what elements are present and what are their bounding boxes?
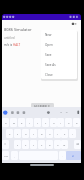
button[interactable]: r [26,118,33,127]
staticText: q [5,121,7,124]
staticText: 8086 Simulator [4,27,32,32]
button[interactable]: ⇧ [2,140,9,149]
button[interactable]: ASSEMBLE [31,103,54,110]
button[interactable]: e [18,118,25,127]
button[interactable]: g [38,129,45,138]
staticText: Save As [45,63,56,67]
staticText: l [72,132,73,135]
staticText: u [53,121,55,124]
button[interactable]: s [14,129,21,138]
button[interactable]: z [14,140,21,149]
button[interactable]: q [2,118,9,127]
staticText: ⇧ [4,143,7,146]
button[interactable]: ↵ [66,151,81,160]
staticText: ↵ [72,154,75,157]
button[interactable]: c [30,140,37,149]
staticText: Close [45,73,53,77]
button[interactable]: ⌫ [74,140,81,149]
staticText: HALT [13,43,21,47]
staticText: n [57,143,59,146]
staticText: b [49,143,51,146]
staticText: w [13,121,15,124]
button[interactable]: Save As [41,60,77,70]
staticText: untitled [4,36,15,40]
staticText: t [37,121,38,124]
button[interactable]: ?123 [2,151,9,160]
staticText: Open [45,43,53,47]
staticText: i [60,121,61,124]
staticText: r [29,121,30,124]
button[interactable]: a [6,129,13,138]
staticText: New [45,33,52,37]
button[interactable]: x [22,140,29,149]
staticText: ASSEMBLE [34,105,51,109]
staticText: d [25,132,27,135]
staticText: ⌫ [76,143,80,146]
staticText: j [57,132,58,135]
button[interactable]: n [54,140,61,149]
button[interactable]: f [30,129,37,138]
button[interactable]: b [46,140,53,149]
staticText: f [33,132,34,135]
button[interactable]: Close [41,70,77,79]
button[interactable]: v [38,140,45,149]
button[interactable]: Open [41,40,77,50]
staticText: h [49,132,51,135]
button[interactable]: u [50,118,57,127]
staticText: ?123 [4,155,8,157]
button[interactable]: l [69,129,76,138]
button[interactable]: j [54,129,61,138]
staticText: s [17,132,19,135]
button[interactable]: m [61,140,68,149]
staticText: . [62,154,63,157]
staticText: g [41,132,43,135]
staticText: m [63,143,66,146]
staticText: e [21,121,23,124]
button[interactable]: t [34,118,41,127]
staticText: a [9,132,11,135]
staticText: p [76,121,78,124]
button[interactable]: h [46,129,53,138]
button[interactable]: Save [41,50,77,60]
staticText: o [68,121,70,124]
staticText: k [64,132,66,135]
button[interactable]: k [61,129,68,138]
staticText: y [45,121,47,124]
button[interactable]: p [73,118,80,127]
button[interactable]: d [22,129,29,138]
button[interactable]: y [42,118,49,127]
staticText: v [41,143,43,146]
button[interactable]: o [65,118,72,127]
button[interactable]: New [41,30,77,40]
staticText: m/c is [4,43,13,47]
button[interactable]: w [10,118,17,127]
staticText: c [33,143,35,146]
staticText: Save [45,53,52,57]
button[interactable]: i [57,118,64,127]
staticText: x [25,143,27,146]
staticText: z [17,143,19,146]
